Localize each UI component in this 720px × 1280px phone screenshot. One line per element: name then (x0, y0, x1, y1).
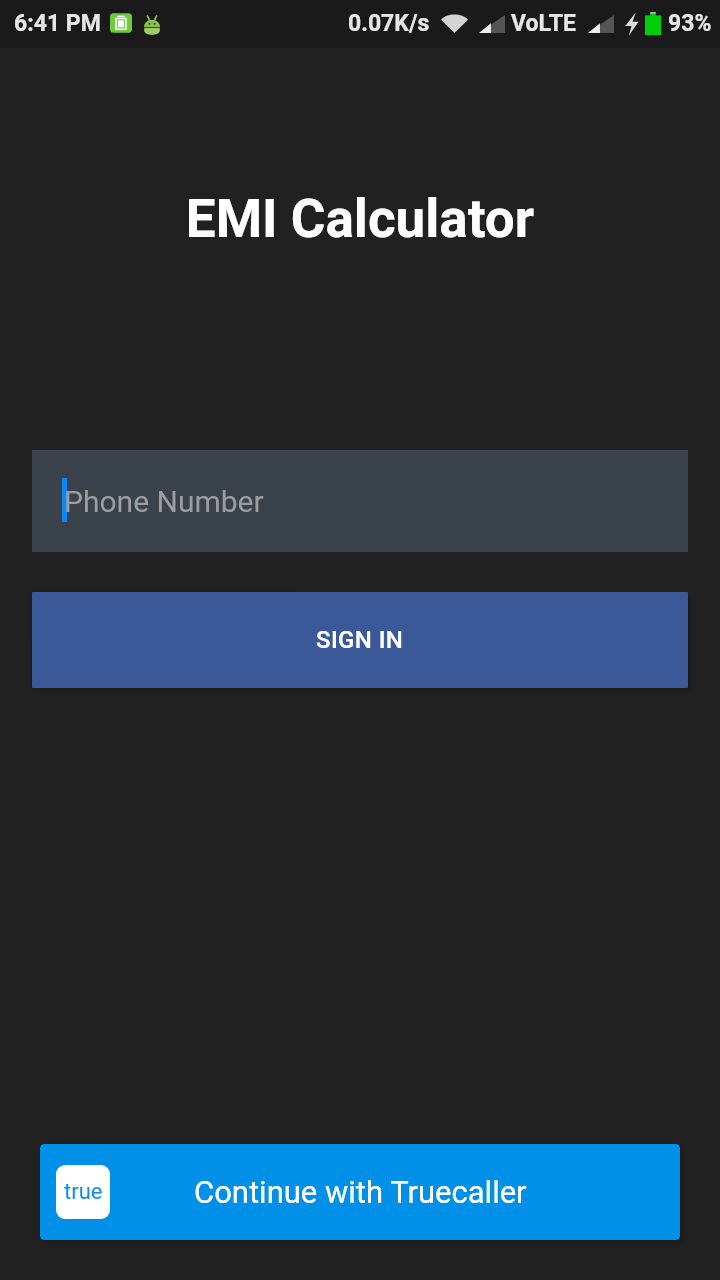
other: Charging (624, 12, 639, 36)
other: Battery (645, 12, 661, 35)
staticText: 6:41 PM (14, 10, 101, 37)
staticText: true (64, 1179, 103, 1205)
staticText: Phone Number (64, 484, 264, 519)
staticText: VoLTE (511, 10, 576, 37)
staticText: EMI Calculator (0, 188, 720, 250)
other: Developer options (142, 12, 162, 36)
other: Battery saver (110, 12, 132, 34)
other: Signal 2 (588, 15, 614, 33)
button[interactable]: Continue with Truecaller (40, 1144, 680, 1240)
other: Wi-Fi (441, 14, 468, 33)
staticText: SIGN IN (316, 626, 404, 654)
button[interactable]: SIGN IN (32, 592, 688, 688)
staticText: Continue with Truecaller (194, 1174, 527, 1210)
staticText: 0.07K/s (348, 10, 430, 37)
staticText: 93% (668, 10, 712, 37)
other: Signal (479, 15, 505, 33)
button[interactable]: Phone Number (32, 450, 688, 552)
